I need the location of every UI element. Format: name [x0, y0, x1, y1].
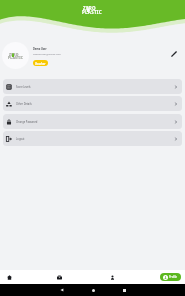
button[interactable]: Home	[2, 270, 16, 284]
button[interactable]: Score Levels	[3, 79, 182, 94]
button[interactable]: Logout	[3, 131, 182, 146]
staticText: aadamuser@gmail.com	[33, 52, 61, 55]
button[interactable]: Rewards	[105, 270, 119, 284]
button[interactable]: Edit profile	[168, 48, 180, 60]
button[interactable]: Profile	[160, 273, 181, 281]
button[interactable]: Change Password	[3, 114, 182, 129]
button[interactable]: Products	[52, 270, 66, 284]
staticText: Other Details	[16, 102, 32, 105]
staticText: Demo User	[33, 47, 47, 50]
staticText: Voucher	[35, 62, 46, 65]
button[interactable]: Voucher	[33, 60, 48, 66]
staticText: PLASTIC	[8, 55, 24, 60]
staticText: Logout	[16, 137, 25, 140]
staticText: Change Password	[16, 120, 38, 123]
button[interactable]: Other Details	[3, 96, 182, 111]
staticText: ZERO	[9, 52, 19, 57]
staticText: Profile	[169, 275, 178, 279]
staticText: PLASTIC	[82, 9, 103, 15]
staticText: Score Levels	[16, 85, 31, 88]
staticText: ZERO	[83, 5, 96, 11]
